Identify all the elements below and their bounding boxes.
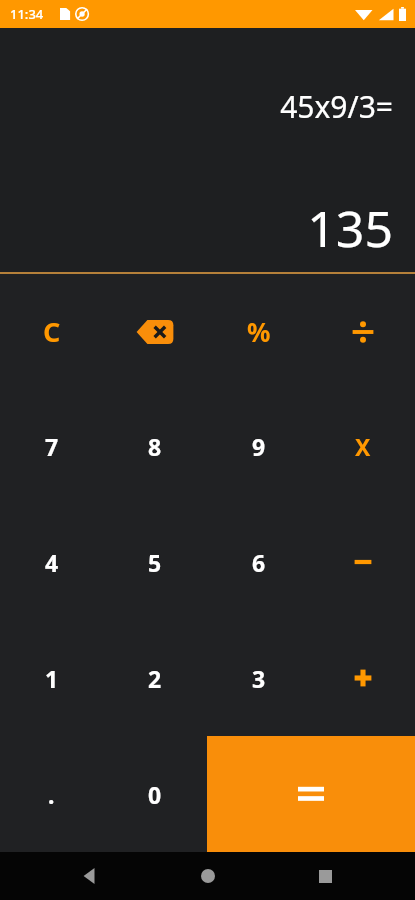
button[interactable]: 1 — [0, 620, 103, 736]
button[interactable]: Home — [181, 852, 235, 900]
button[interactable]: 3 — [207, 620, 311, 736]
button[interactable]: 0 — [103, 736, 207, 852]
staticText: 0 — [148, 779, 162, 810]
button[interactable]: Divide — [311, 274, 415, 389]
button[interactable]: X — [311, 389, 415, 504]
staticText: . — [48, 779, 55, 810]
button[interactable]: 4 — [0, 504, 103, 620]
staticText: 7 — [45, 431, 59, 462]
button[interactable]: 2 — [103, 620, 207, 736]
staticText: 9 — [252, 431, 266, 462]
button[interactable]: C — [0, 274, 103, 389]
button[interactable]: Recent apps — [298, 852, 352, 900]
staticText: 135 — [307, 194, 393, 262]
button[interactable]: 9 — [207, 389, 311, 504]
staticText: 45x9/3= — [280, 86, 393, 127]
button[interactable]: 5 — [103, 504, 207, 620]
staticText: 2 — [148, 663, 162, 694]
staticText: 1 — [45, 663, 59, 694]
button[interactable]: 6 — [207, 504, 311, 620]
staticText: % — [247, 314, 271, 349]
staticText: 11:34 — [10, 5, 44, 23]
button[interactable]: Minus — [311, 504, 415, 620]
staticText: 3 — [252, 663, 266, 694]
button[interactable]: 7 — [0, 389, 103, 504]
staticText: X — [355, 431, 371, 462]
button[interactable]: Back — [63, 852, 117, 900]
button[interactable]: % — [207, 274, 311, 389]
staticText: 5 — [148, 547, 162, 578]
staticText: 4 — [45, 547, 59, 578]
button[interactable]: Backspace — [103, 274, 207, 389]
button[interactable]: Plus — [311, 620, 415, 736]
button[interactable]: . — [0, 736, 103, 852]
button[interactable]: Equals — [207, 736, 415, 852]
staticText: 8 — [148, 431, 162, 462]
staticText: 6 — [252, 547, 266, 578]
button[interactable]: 8 — [103, 389, 207, 504]
staticText: C — [43, 313, 61, 350]
